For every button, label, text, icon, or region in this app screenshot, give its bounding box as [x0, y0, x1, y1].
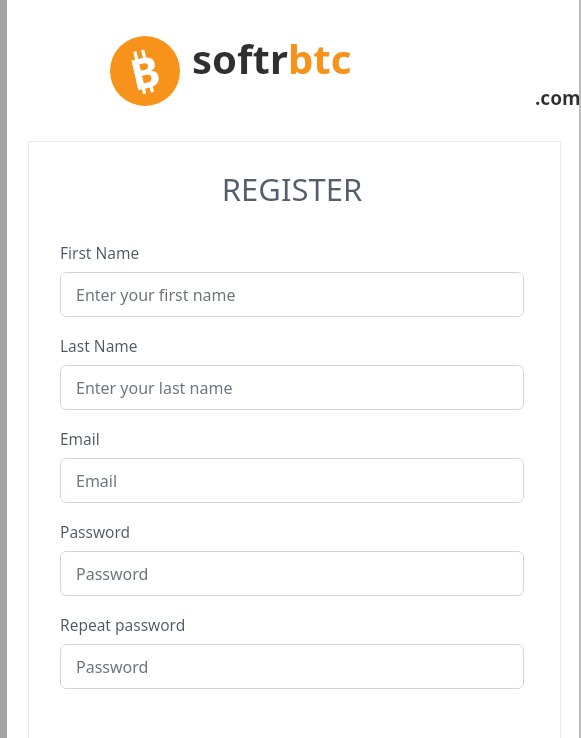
staticText: Password: [76, 656, 149, 678]
staticText: btc: [288, 31, 352, 85]
staticText: Last Name: [60, 335, 138, 356]
staticText: Password: [76, 563, 149, 585]
staticText: Email: [60, 428, 100, 449]
button[interactable]: Enter your last name: [60, 365, 524, 410]
staticText: B: [125, 41, 165, 102]
staticText: Email: [76, 470, 118, 492]
staticText: REGISTER: [60, 168, 524, 210]
button[interactable]: Enter your first name: [60, 272, 524, 317]
staticText: Enter your first name: [76, 284, 236, 306]
staticText: .com: [535, 85, 581, 111]
staticText: Repeat password: [60, 614, 186, 635]
button[interactable]: softrbtc.com home: [110, 31, 581, 111]
button[interactable]: Password: [60, 644, 524, 689]
button[interactable]: Email: [60, 458, 524, 503]
staticText: First Name: [60, 242, 140, 263]
staticText: softr: [192, 31, 288, 85]
staticText: Password: [60, 521, 131, 542]
button[interactable]: Password: [60, 551, 524, 596]
staticText: Enter your last name: [76, 377, 233, 399]
